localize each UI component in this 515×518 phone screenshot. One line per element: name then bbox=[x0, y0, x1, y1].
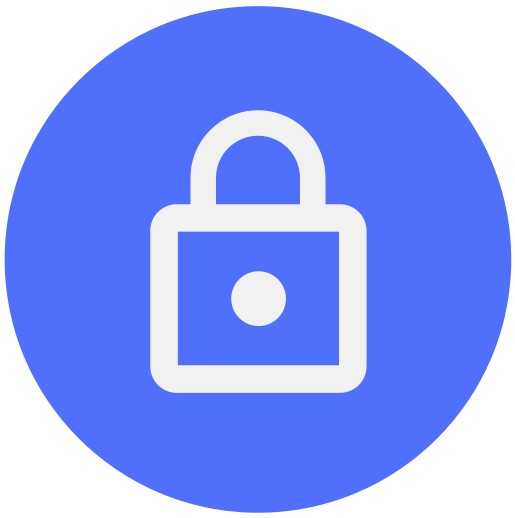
button[interactable]: Locked bbox=[0, 0, 515, 518]
